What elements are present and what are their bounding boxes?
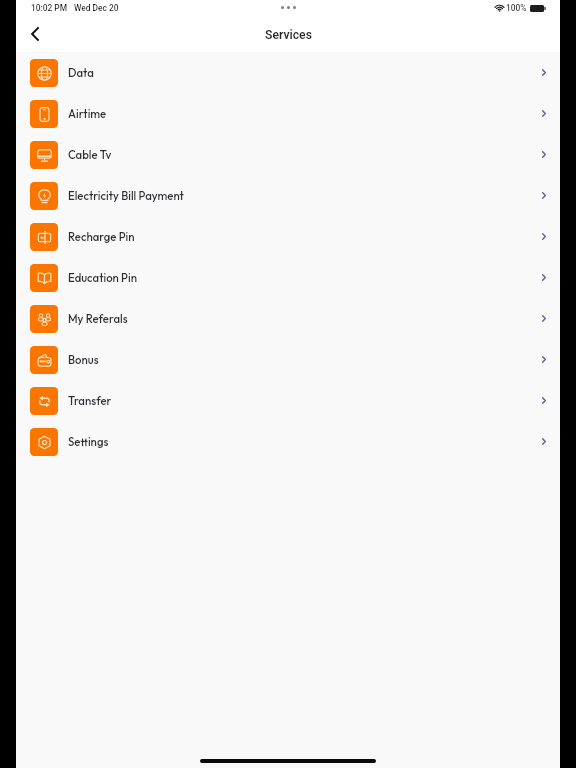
button[interactable]: Back [20,19,50,49]
button[interactable]: Transfer [16,380,560,421]
staticText: Education Pin [68,271,137,285]
staticText: 100% [506,3,527,13]
button[interactable]: Education Pin [16,257,560,298]
staticText: Airtime [68,107,107,121]
staticText: Bonus [68,353,99,367]
staticText: Transfer [68,394,112,408]
button[interactable]: Recharge Pin [16,216,560,257]
staticText: My Referals [68,312,128,326]
button[interactable]: Settings [16,421,560,462]
staticText: Services [265,28,312,42]
staticText: 10:02 PM [31,3,68,13]
button[interactable]: My Referals [16,298,560,339]
button[interactable]: Electricity Bill Payment [16,175,560,216]
button[interactable]: Data [16,52,560,93]
staticText: Cable Tv [68,148,112,162]
button[interactable]: Airtime [16,93,560,134]
staticText: Recharge Pin [68,230,135,244]
staticText: Data [68,66,94,80]
staticText: Settings [68,435,109,449]
staticText: Wed Dec 20 [74,3,119,13]
staticText: Electricity Bill Payment [68,189,184,203]
button[interactable]: Bonus [16,339,560,380]
button[interactable]: Cable Tv [16,134,560,175]
